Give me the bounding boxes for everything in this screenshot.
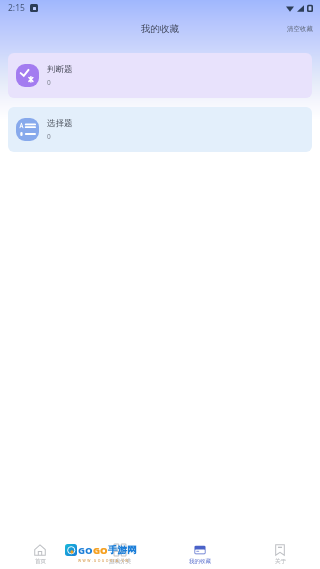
button[interactable]: 我的收藏 bbox=[160, 544, 240, 569]
staticText: 清空收藏 bbox=[287, 25, 313, 33]
staticText: 0 bbox=[47, 132, 51, 141]
button[interactable]: 清空收藏 bbox=[280, 19, 320, 39]
other: 关于 bbox=[274, 544, 286, 556]
staticText: 选择题 bbox=[47, 118, 73, 129]
button[interactable]: 游戏分类 bbox=[80, 544, 160, 569]
staticText: 我的收藏 bbox=[141, 23, 179, 35]
staticText: 我的收藏 bbox=[189, 558, 211, 565]
button[interactable]: 判断题 bbox=[8, 53, 312, 98]
staticText: GO bbox=[93, 544, 108, 557]
staticText: 关于 bbox=[275, 558, 286, 565]
staticText: 判断题 bbox=[47, 64, 73, 75]
button[interactable]: 首页 bbox=[0, 544, 80, 569]
staticText: 2:15 bbox=[8, 2, 25, 14]
staticText: 游戏分类 bbox=[109, 558, 131, 565]
other: 游戏分类 bbox=[114, 544, 126, 556]
staticText: GO bbox=[78, 544, 93, 557]
button[interactable]: 关于 bbox=[240, 544, 320, 569]
staticText: 手游网 bbox=[108, 544, 137, 556]
other: 我的收藏 bbox=[194, 544, 206, 556]
staticText: 首页 bbox=[35, 558, 46, 565]
staticText: 0 bbox=[47, 78, 51, 87]
button[interactable]: 选择题 bbox=[8, 107, 312, 152]
other: 首页 bbox=[34, 544, 46, 556]
staticText: WWW.GOGOXIA.CN bbox=[78, 558, 130, 563]
